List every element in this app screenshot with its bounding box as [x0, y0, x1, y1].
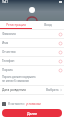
staticText: Телефон — [2, 59, 15, 63]
staticText: Вход — [44, 23, 52, 27]
staticText: Регистрация — [6, 23, 26, 27]
staticText: Дата рождения — [2, 88, 26, 92]
staticText: Отчество — [2, 50, 16, 54]
button[interactable]: Имя — [0, 39, 64, 47]
staticText: Фамилия — [2, 32, 16, 36]
staticText: Пароль — [2, 68, 13, 72]
staticText: 9:41 — [2, 0, 8, 4]
button[interactable]: Я согласен с — [0, 101, 64, 107]
button[interactable]: Вход — [32, 21, 64, 29]
button[interactable]: Регистрация — [0, 21, 32, 29]
staticText: Выбрать — [46, 88, 59, 92]
other: Очистить — [59, 51, 62, 54]
other: Очистить — [59, 42, 62, 45]
staticText: Я согласен с — [8, 102, 25, 106]
button[interactable]: Фамилия — [0, 30, 64, 38]
staticText: не менее 6 символов — [2, 79, 29, 83]
other: Очистить — [59, 60, 62, 63]
staticText: Имя — [2, 41, 9, 45]
staticText: условиями — [26, 102, 41, 106]
button[interactable]: Телефон — [0, 57, 64, 65]
button[interactable]: Дата рождения — [0, 86, 64, 94]
staticText: Пароль должен содержать — [2, 75, 36, 79]
other: Очистить — [59, 33, 62, 36]
staticText: Далее — [27, 111, 38, 116]
other: Очистить — [59, 69, 62, 72]
button[interactable]: Далее — [2, 109, 62, 117]
button[interactable]: Отчество — [0, 48, 64, 56]
button[interactable]: Пароль — [0, 66, 64, 74]
